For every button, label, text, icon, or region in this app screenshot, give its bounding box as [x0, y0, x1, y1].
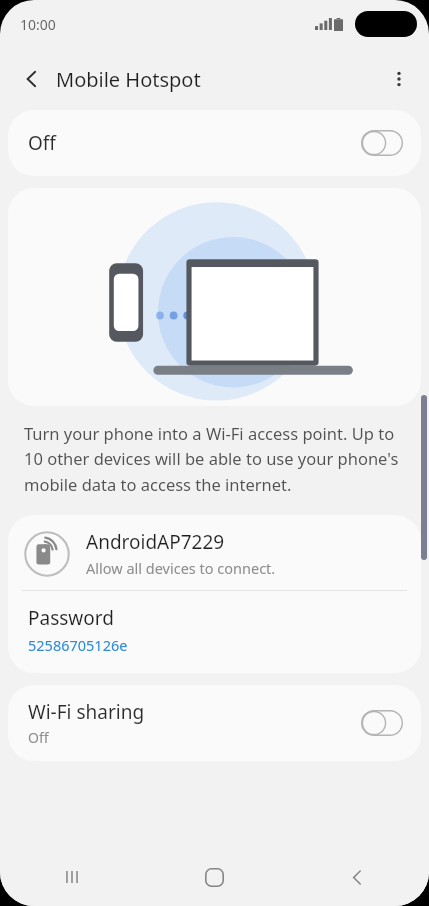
- staticText: Mobile Hotspot: [56, 66, 201, 93]
- button[interactable]: Recents: [0, 848, 143, 906]
- staticText: Turn your phone into a Wi-Fi access poin…: [24, 422, 405, 496]
- button[interactable]: Password: [8, 591, 421, 673]
- staticText: Allow all devices to connect.: [86, 558, 276, 578]
- button[interactable]: Back: [10, 57, 54, 101]
- staticText: Password: [28, 605, 114, 631]
- staticText: 10:00: [20, 15, 56, 34]
- staticText: Off: [28, 728, 49, 747]
- button[interactable]: Off: [8, 110, 421, 176]
- button[interactable]: AndroidAP7229: [8, 515, 421, 590]
- button[interactable]: Wi-Fi sharing: [8, 685, 421, 761]
- button[interactable]: Home: [143, 848, 286, 906]
- button[interactable]: Back: [286, 848, 429, 906]
- staticText: Wi-Fi sharing: [28, 699, 145, 725]
- staticText: AndroidAP7229: [86, 529, 225, 555]
- staticText: Off: [28, 130, 56, 156]
- staticText: 52586705126e: [28, 635, 128, 655]
- button[interactable]: More options: [377, 57, 421, 101]
